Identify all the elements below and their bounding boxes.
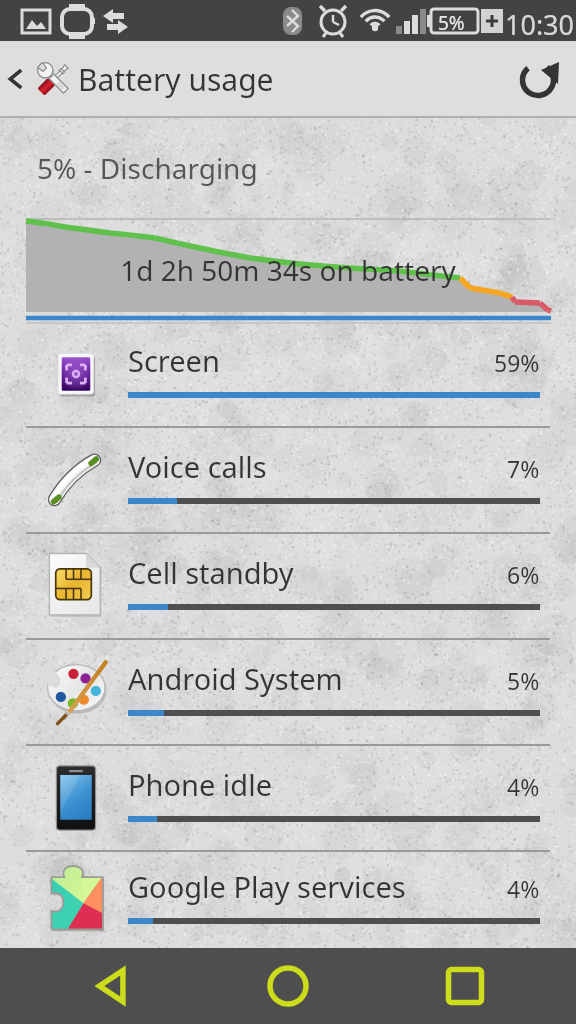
button[interactable]: Navigate up (0, 41, 32, 117)
staticText: 1d 2h 50m 34s on battery (120, 251, 456, 289)
button[interactable]: Recent apps (400, 948, 530, 1024)
button[interactable]: Cell standby (0, 534, 576, 638)
staticText: 59% (494, 347, 540, 378)
staticText: Phone idle (128, 765, 272, 804)
button[interactable]: Home (223, 948, 353, 1024)
staticText: 4% (507, 771, 540, 802)
staticText: 6% (507, 559, 540, 590)
button[interactable]: Android System (0, 640, 576, 744)
staticText: 5% - Discharging (37, 149, 258, 187)
staticText: Screen (128, 341, 220, 380)
staticText: 5% (438, 10, 465, 36)
staticText: 10:30 (505, 6, 575, 43)
button[interactable]: Screen (0, 322, 576, 426)
button[interactable]: Google Play services (0, 852, 576, 948)
staticText: Voice calls (128, 447, 267, 486)
staticText: 5% (507, 665, 540, 696)
button[interactable]: Voice calls (0, 428, 576, 532)
staticText: 7% (507, 453, 540, 484)
staticText: 4% (507, 873, 540, 904)
staticText: Android System (128, 659, 343, 698)
button[interactable]: Refresh (502, 41, 576, 117)
button[interactable]: Back (47, 948, 177, 1024)
staticText: Cell standby (128, 553, 294, 592)
button[interactable]: Phone idle (0, 746, 576, 850)
staticText: Battery usage (78, 59, 274, 100)
staticText: Google Play services (128, 867, 406, 906)
